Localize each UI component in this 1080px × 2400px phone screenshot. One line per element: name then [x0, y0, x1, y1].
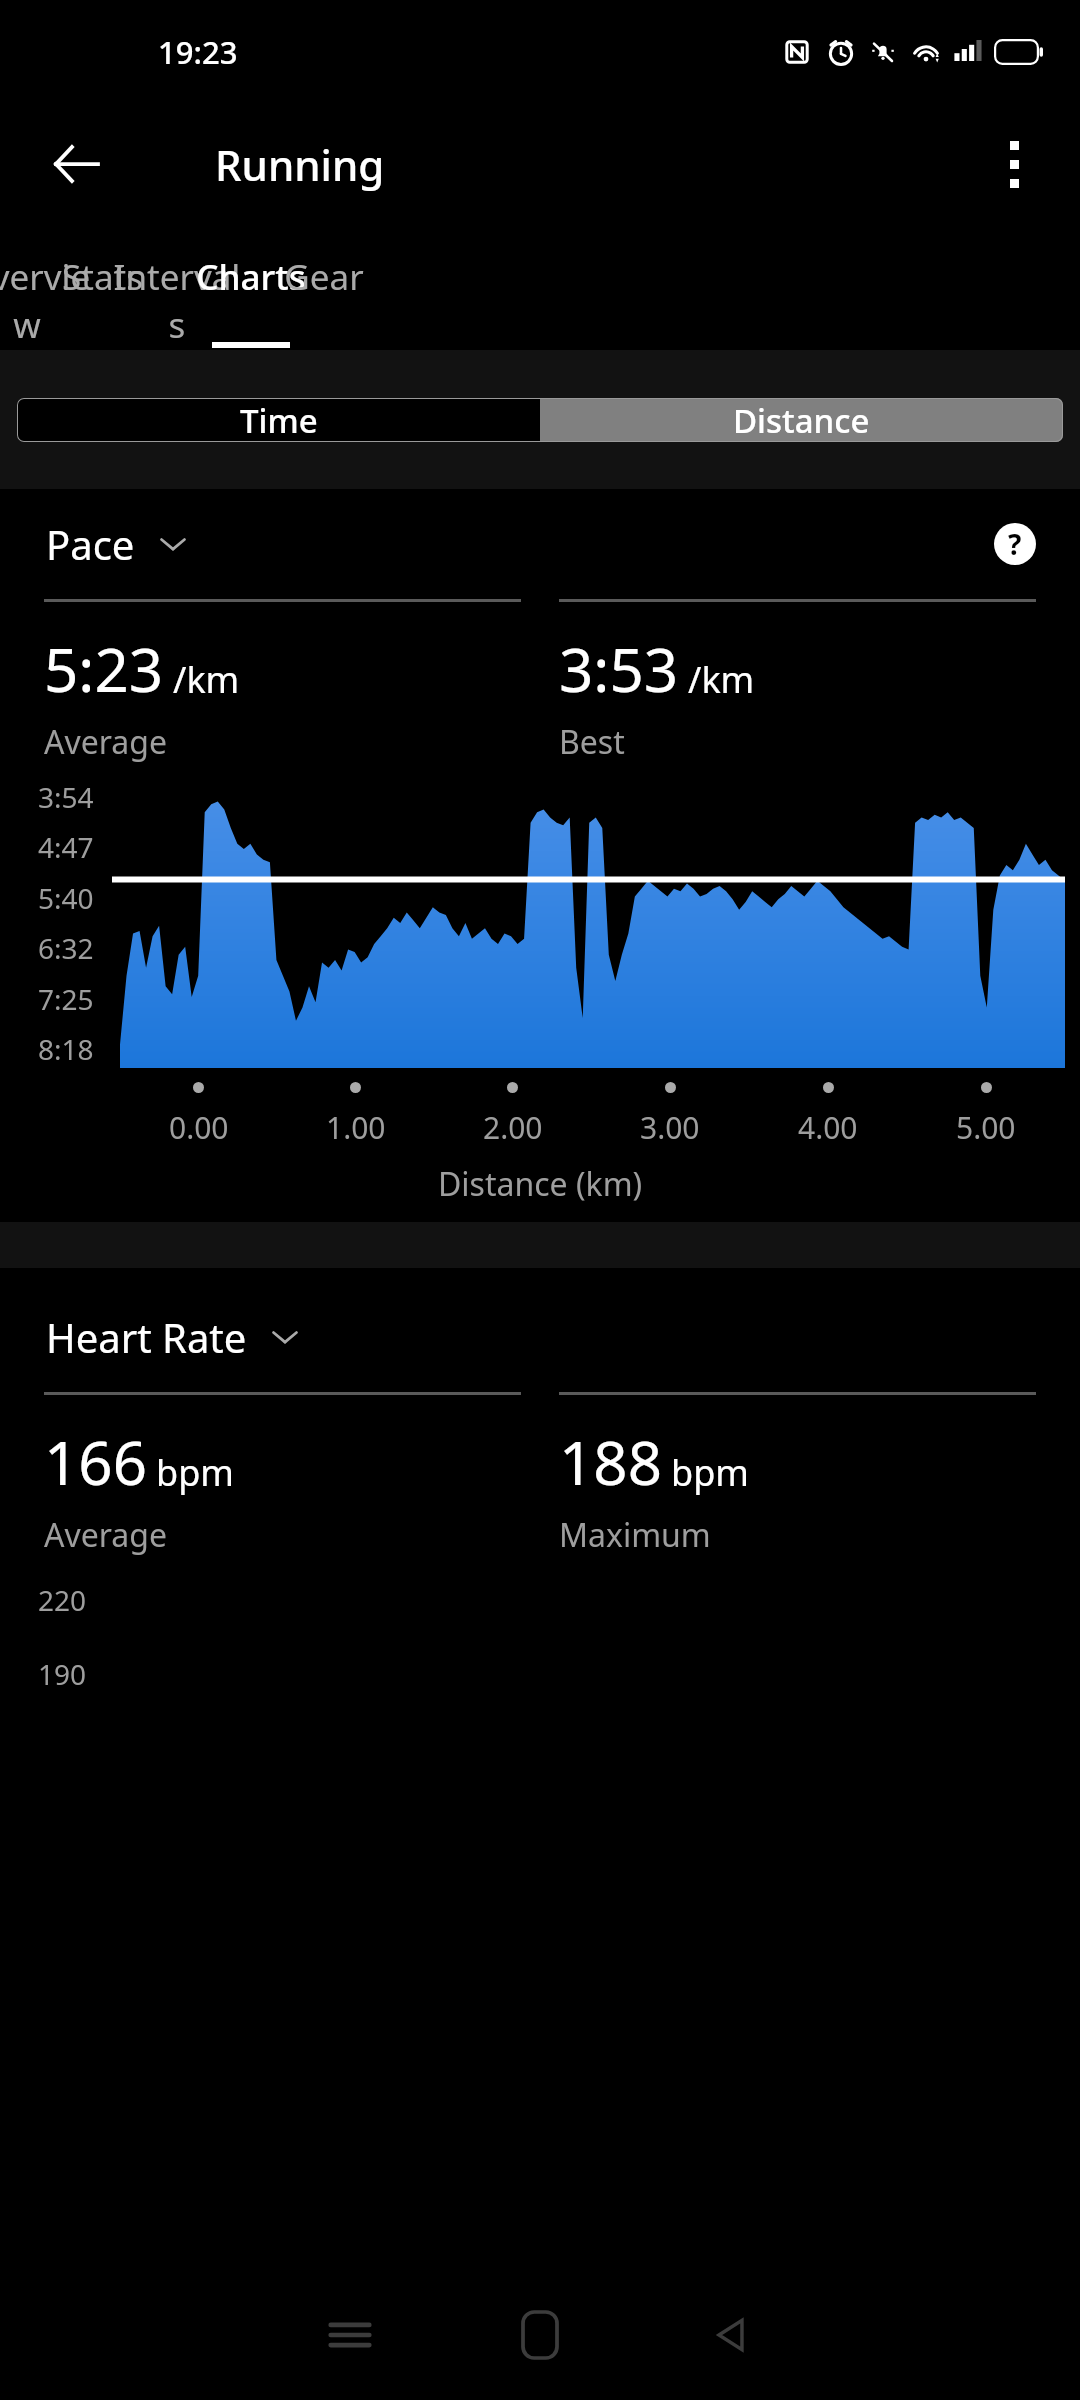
staticText: 6:32 — [38, 929, 94, 967]
staticText: 7:25 — [38, 980, 94, 1018]
button[interactable]: Gear — [254, 225, 394, 350]
button[interactable]: Stats — [32, 225, 172, 350]
staticText: 19:23 — [158, 31, 238, 73]
button[interactable]: Charts — [181, 225, 321, 350]
staticText: Stats — [62, 253, 143, 301]
staticText: Heart Rate — [46, 1310, 247, 1364]
button[interactable]: Back — [635, 2280, 825, 2390]
staticText: 5.00 — [956, 1107, 1016, 1148]
staticText: Gear — [284, 253, 364, 301]
staticText: Charts — [196, 253, 306, 301]
staticText: 220 — [38, 1581, 87, 1619]
staticText: ? — [1008, 525, 1022, 563]
staticText: 5:23 — [44, 628, 164, 710]
button[interactable]: Home — [445, 2280, 635, 2390]
staticText: 3.00 — [640, 1107, 700, 1148]
staticText: bpm — [671, 1448, 749, 1497]
staticText: Average — [44, 1513, 168, 1557]
staticText: bpm — [156, 1448, 234, 1497]
staticText: 2.00 — [483, 1107, 543, 1148]
button[interactable]: Time — [17, 398, 540, 442]
staticText: Overview — [0, 253, 97, 349]
staticText: 3:54 — [38, 778, 94, 816]
staticText: Running — [215, 136, 385, 193]
staticText: Average — [44, 720, 168, 764]
button[interactable]: Pace — [46, 517, 189, 571]
staticText: 5:40 — [38, 879, 94, 917]
staticText: 190 — [38, 1655, 87, 1693]
staticText: 4.00 — [798, 1107, 858, 1148]
staticText: Time — [240, 398, 318, 442]
button[interactable]: Intervals — [107, 225, 247, 350]
staticText: Distance — [733, 398, 870, 442]
button[interactable]: Heart Rate — [46, 1310, 301, 1364]
button[interactable]: Recents — [255, 2280, 445, 2390]
staticText: Pace — [46, 517, 135, 571]
staticText: Maximum — [559, 1513, 711, 1557]
button[interactable]: Overview — [0, 225, 97, 350]
button[interactable]: Distance — [540, 398, 1063, 442]
staticText: 166 — [44, 1421, 147, 1503]
staticText: 8:18 — [38, 1030, 94, 1068]
button[interactable]: More options — [974, 124, 1054, 204]
staticText: 3:53 — [559, 628, 679, 710]
button[interactable]: Back — [38, 126, 114, 202]
staticText: 0.00 — [169, 1107, 229, 1148]
staticText: 4:47 — [38, 828, 94, 866]
staticText: /km — [688, 655, 755, 704]
staticText: 1.00 — [326, 1107, 386, 1148]
staticText: 188 — [559, 1421, 662, 1503]
button[interactable]: Help — [988, 517, 1042, 571]
staticText: Intervals — [107, 253, 247, 349]
staticText: Distance (km) — [438, 1162, 643, 1206]
staticText: /km — [173, 655, 240, 704]
staticText: Best — [559, 720, 625, 764]
